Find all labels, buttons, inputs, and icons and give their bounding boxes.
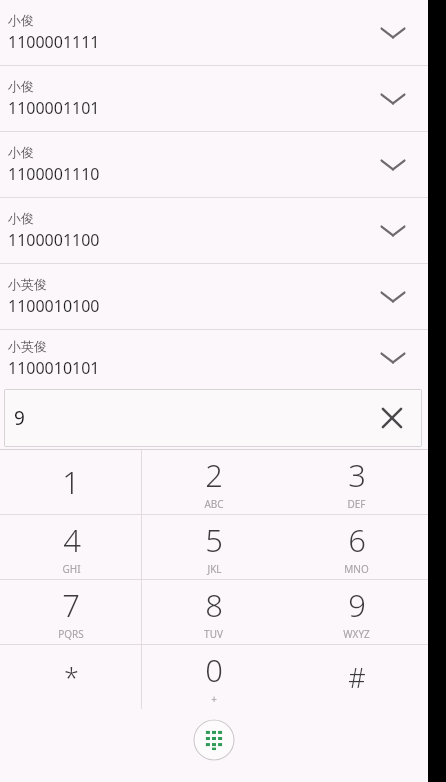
staticText: 小俊 [8,210,34,226]
button[interactable]: 6 [285,515,428,579]
staticText: 6 [348,519,366,561]
staticText: 5 [205,519,223,561]
button[interactable]: 9 [285,580,428,644]
button[interactable]: 小俊 [0,132,428,197]
staticText: 小俊 [8,144,34,160]
staticText: 小俊 [8,78,34,94]
button[interactable]: Dialpad [193,719,235,761]
staticText: 0 [205,649,223,691]
button[interactable]: # [285,645,428,709]
staticText: 8 [205,584,223,626]
button[interactable]: 小英俊 [0,330,428,386]
staticText: 7 [62,584,80,626]
staticText: 1100001100 [8,229,100,251]
button[interactable]: 7 [0,580,142,644]
button[interactable]: 5 [142,515,285,579]
button[interactable]: Expand [366,331,420,385]
staticText: ABC [204,497,224,511]
button[interactable]: 小俊 [0,198,428,263]
button[interactable]: 1 [0,450,142,514]
button[interactable]: Expand [366,204,420,258]
button[interactable]: Expand [366,270,420,324]
staticText: + [211,692,217,706]
staticText: 1100001111 [8,31,100,53]
staticText: 小英俊 [8,338,47,354]
staticText: 9 [348,584,366,626]
staticText: 1100010100 [8,295,100,317]
staticText: 1100010101 [8,357,100,379]
button[interactable]: 2 [142,450,285,514]
button[interactable]: Expand [366,72,420,126]
staticText: # [348,659,366,696]
staticText: * [64,659,79,696]
staticText: 小俊 [8,12,34,28]
button[interactable]: 小俊 [0,0,428,65]
staticText: 小英俊 [8,276,47,292]
staticText: 3 [348,454,366,496]
staticText: DEF [347,497,366,511]
staticText: JKL [207,562,222,576]
staticText: GHI [62,562,81,576]
button[interactable]: 8 [142,580,285,644]
button[interactable]: 0 [142,645,285,709]
button[interactable]: * [0,645,142,709]
button[interactable]: 小俊 [0,66,428,131]
staticText: 1 [62,461,80,503]
staticText: MNO [344,562,369,576]
button[interactable]: Expand [366,138,420,192]
button[interactable]: Clear [370,396,414,440]
staticText: 1100001110 [8,163,100,185]
staticText: 1100001101 [8,97,100,119]
button[interactable]: Expand [366,6,420,60]
staticText: 4 [63,519,81,561]
staticText: TUV [204,627,223,641]
button[interactable]: 小英俊 [0,264,428,329]
staticText: WXYZ [343,627,370,641]
button[interactable]: 9 [4,389,422,447]
staticText: 9 [14,405,25,431]
button[interactable]: 3 [285,450,428,514]
staticText: PQRS [58,627,84,641]
button[interactable]: 4 [0,515,142,579]
staticText: 2 [205,454,223,496]
